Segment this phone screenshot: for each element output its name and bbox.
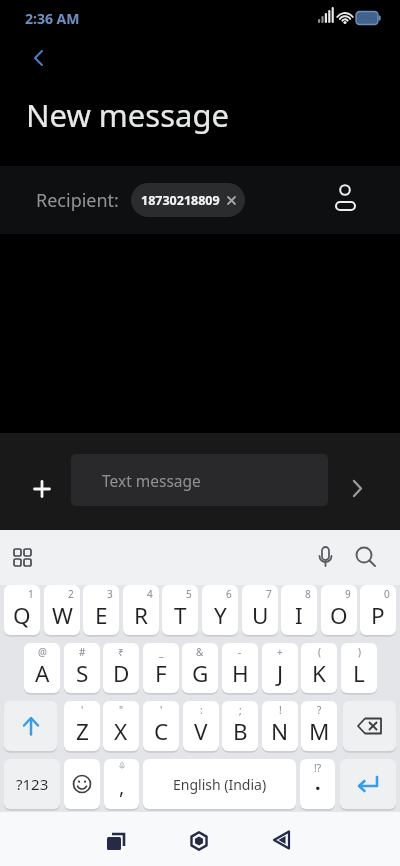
staticText: ₹ — [118, 645, 124, 659]
button[interactable]: G — [182, 643, 218, 693]
button[interactable] — [327, 180, 367, 220]
button[interactable]: J — [262, 643, 298, 693]
button[interactable] — [340, 759, 396, 809]
button[interactable]: K — [301, 643, 337, 693]
button[interactable] — [22, 42, 54, 74]
staticText: H — [232, 658, 249, 689]
staticText: English (India) — [173, 775, 267, 794]
staticText: # — [79, 645, 86, 659]
button[interactable]: Q — [4, 585, 40, 635]
button[interactable] — [183, 825, 215, 857]
staticText: N — [271, 716, 289, 747]
staticText: _ — [159, 645, 164, 659]
staticText: C — [154, 716, 169, 747]
staticText: S — [76, 658, 89, 689]
button[interactable]: F — [143, 643, 179, 693]
staticText: O — [330, 600, 348, 631]
staticText: @ — [38, 645, 47, 659]
staticText: : — [200, 703, 203, 717]
staticText: 0 — [384, 587, 390, 601]
staticText: ( — [318, 645, 321, 659]
staticText: Recipient: — [36, 188, 119, 213]
staticText: R — [134, 600, 148, 631]
button[interactable]: E — [83, 585, 119, 635]
button[interactable] — [8, 542, 38, 572]
button[interactable]: ?123 — [4, 759, 60, 809]
button[interactable]: English (India) — [143, 759, 296, 809]
button[interactable]: 18730218809 — [131, 183, 245, 217]
staticText: 5 — [186, 587, 192, 601]
staticText: , — [119, 773, 125, 800]
staticText: 2:36 AM — [25, 9, 80, 28]
staticText: P — [371, 600, 385, 631]
button[interactable] — [26, 473, 58, 505]
button[interactable]: Z — [64, 701, 100, 751]
staticText: L — [353, 658, 365, 689]
staticText: " — [119, 703, 124, 717]
staticText: . — [315, 769, 321, 796]
staticText: 18730218809 — [141, 192, 220, 209]
button[interactable]: Y — [202, 585, 238, 635]
button[interactable]: H — [222, 643, 258, 693]
staticText: K — [312, 658, 326, 689]
button[interactable]: A — [24, 643, 60, 693]
button[interactable]: T — [162, 585, 198, 635]
button[interactable]: C — [143, 701, 179, 751]
button[interactable]: U — [242, 585, 278, 635]
staticText: D — [113, 658, 130, 689]
staticText: Text message — [102, 470, 201, 491]
button[interactable]: M — [301, 701, 337, 751]
button[interactable] — [343, 701, 396, 751]
button[interactable] — [266, 824, 298, 856]
button[interactable]: R — [123, 585, 159, 635]
button[interactable]: N — [262, 701, 298, 751]
staticText: ? — [317, 703, 322, 717]
button[interactable]: L — [341, 643, 377, 693]
staticText: 8 — [305, 587, 311, 601]
button[interactable] — [100, 826, 132, 858]
staticText: 7 — [266, 587, 272, 601]
button[interactable] — [342, 473, 372, 503]
staticText: 2 — [68, 587, 74, 601]
staticText: U — [252, 600, 269, 631]
button[interactable]: V — [183, 701, 219, 751]
staticText: E — [95, 600, 108, 631]
staticText: M — [309, 716, 330, 747]
button[interactable]: P — [360, 585, 396, 635]
staticText: ' — [81, 703, 84, 717]
staticText: G — [192, 658, 209, 689]
staticText: 4 — [147, 587, 153, 601]
button[interactable]: . — [300, 759, 335, 809]
button[interactable]: I — [281, 585, 317, 635]
staticText: ) — [358, 645, 361, 659]
staticText: 1 — [28, 587, 34, 601]
button[interactable]: D — [103, 643, 139, 693]
staticText: F — [155, 658, 167, 689]
staticText: - — [238, 645, 242, 659]
staticText: B — [233, 716, 248, 747]
button[interactable]: , — [104, 759, 139, 809]
button[interactable]: Text message — [71, 454, 328, 506]
button[interactable]: B — [222, 701, 258, 751]
staticText: & — [196, 645, 204, 659]
staticText: 6 — [226, 587, 232, 601]
staticText: ' — [160, 703, 163, 717]
staticText: Z — [76, 716, 89, 747]
button[interactable] — [64, 759, 100, 809]
button[interactable] — [310, 542, 340, 572]
button[interactable]: X — [103, 701, 139, 751]
staticText: ?123 — [16, 774, 49, 794]
staticText: T — [174, 600, 187, 631]
staticText: Y — [214, 600, 227, 631]
button[interactable]: W — [44, 585, 80, 635]
staticText: 3 — [107, 587, 113, 601]
staticText: New message — [26, 94, 229, 136]
button[interactable] — [350, 542, 382, 574]
staticText: 9 — [345, 587, 351, 601]
button[interactable]: O — [321, 585, 357, 635]
staticText: I — [295, 600, 303, 631]
staticText: !? — [314, 761, 322, 775]
button[interactable]: S — [64, 643, 100, 693]
button[interactable] — [4, 701, 57, 751]
staticText: Q — [13, 600, 31, 631]
